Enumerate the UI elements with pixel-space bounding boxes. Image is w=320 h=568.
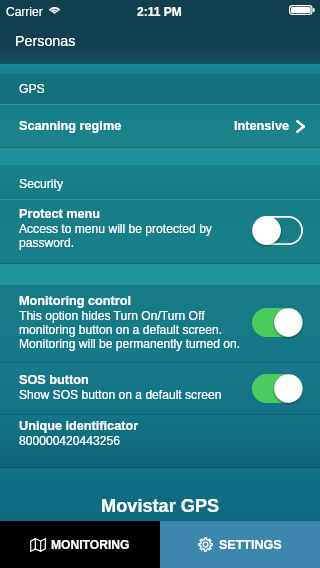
staticText: Carrier (6, 5, 43, 18)
button[interactable]: Enabled (252, 308, 303, 337)
staticText: Monitoring control (19, 294, 132, 308)
other: Monitoring (30, 538, 46, 552)
staticText: 800000420443256 (19, 434, 120, 448)
button[interactable]: Scanning regime (0, 105, 320, 147)
staticText: MONITORING (51, 538, 130, 552)
button[interactable]: Enabled (252, 374, 303, 403)
staticText: Scanning regime (19, 119, 122, 133)
staticText: Intensive (234, 119, 289, 133)
staticText: Movistar GPS (101, 496, 220, 516)
staticText: Unique identificator (19, 419, 139, 433)
staticText: SETTINGS (219, 538, 282, 552)
staticText: Access to menu will be protected by pass… (19, 222, 251, 250)
staticText: Personas (15, 33, 76, 49)
other: Settings (198, 537, 213, 552)
button[interactable]: Disabled (252, 216, 303, 245)
staticText: SOS button (19, 373, 89, 387)
button[interactable]: Monitoring (0, 521, 160, 568)
staticText: 2:11 PM (137, 5, 182, 18)
staticText: This option hides Turn On/Turn Off monit… (19, 309, 251, 351)
staticText: Protect menu (19, 207, 101, 221)
button[interactable]: Settings (160, 521, 320, 568)
staticText: Security (19, 177, 64, 191)
button[interactable]: Unique identificator (19, 419, 139, 448)
staticText: Show SOS button on a default screen (19, 388, 222, 402)
staticText: GPS (19, 82, 45, 96)
